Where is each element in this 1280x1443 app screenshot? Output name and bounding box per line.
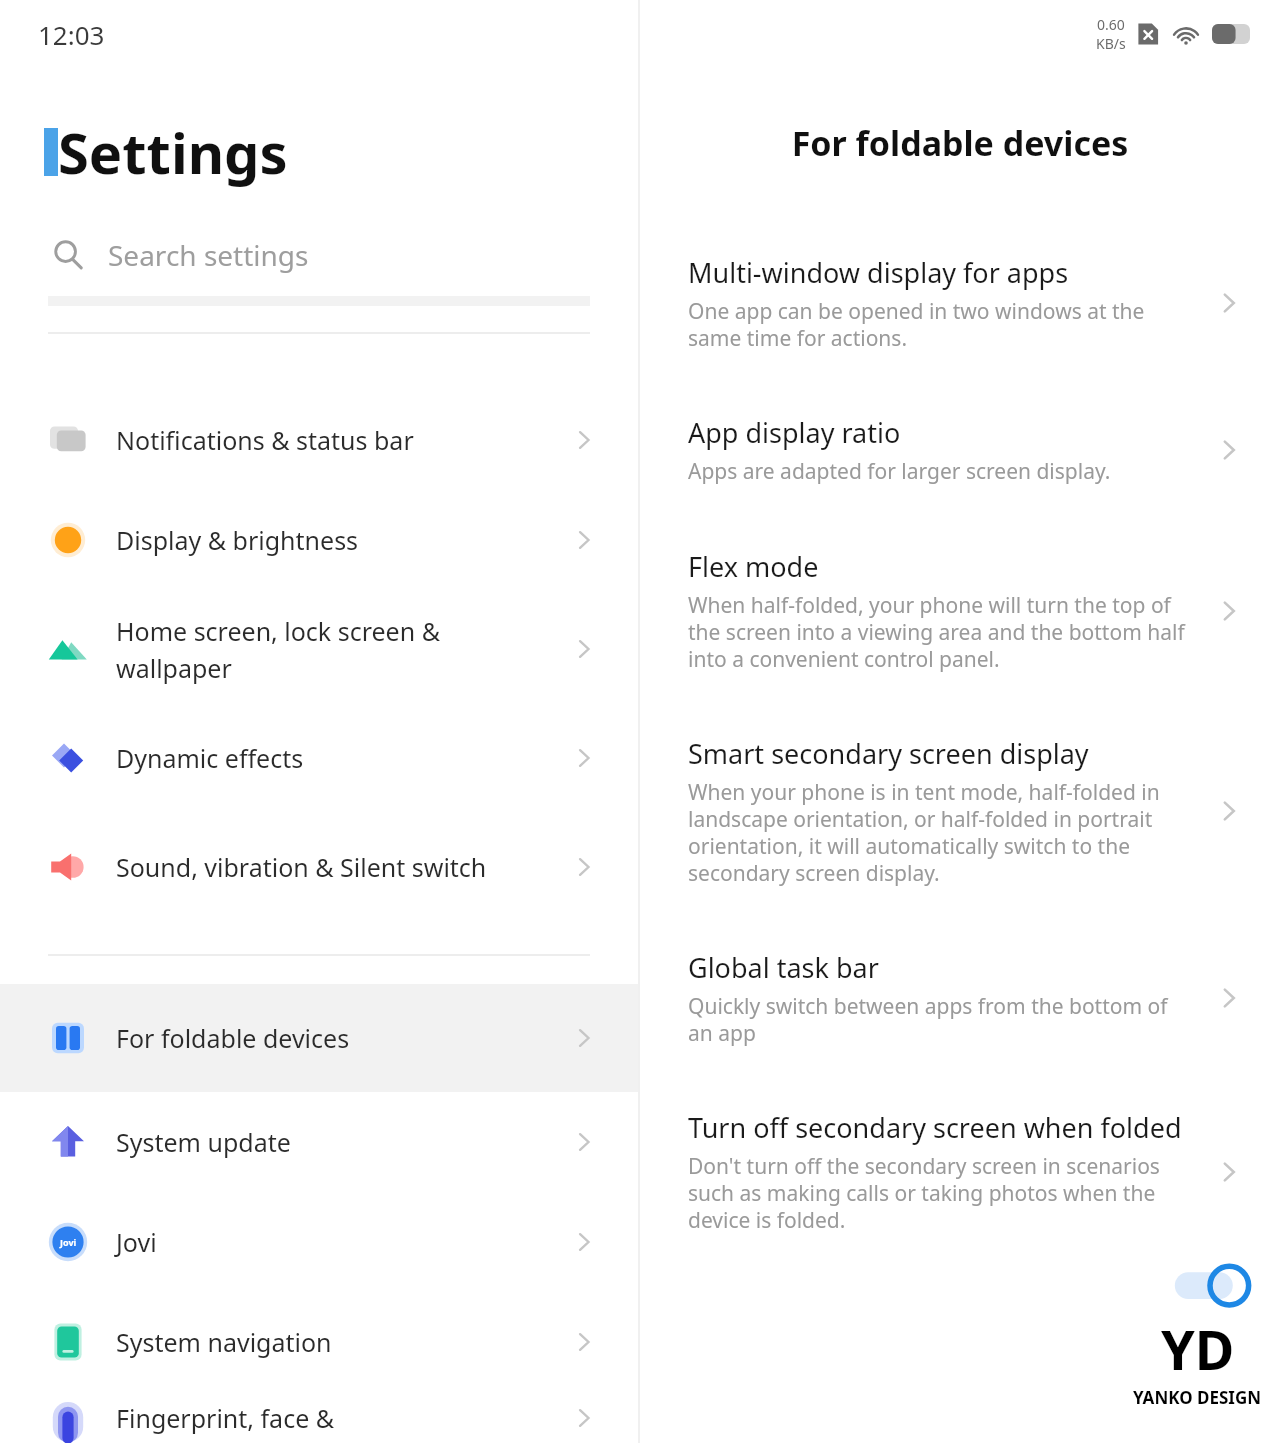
button[interactable]: Fingerprint, face &: [0, 1392, 638, 1443]
button[interactable]: System navigation: [0, 1292, 638, 1392]
staticText: YD: [1161, 1312, 1235, 1386]
staticText: System navigation: [116, 1325, 558, 1359]
staticText: Dynamic effects: [116, 741, 558, 775]
staticText: App display ratio: [688, 414, 901, 451]
button[interactable]: Smart secondary screen display: [640, 721, 1280, 901]
button[interactable]: Flex mode: [640, 534, 1280, 687]
staticText: Fingerprint, face &: [116, 1401, 558, 1435]
button[interactable]: Dynamic effects: [0, 708, 638, 808]
staticText: Global task bar: [688, 949, 879, 986]
staticText: Apps are adapted for larger screen displ…: [688, 457, 1111, 486]
staticText: One app can be opened in two windows at …: [688, 297, 1196, 352]
staticText: System update: [116, 1125, 558, 1159]
button[interactable]: System update: [0, 1092, 638, 1192]
button[interactable]: Display & brightness: [0, 490, 638, 590]
button[interactable]: Multi-window display for apps: [640, 240, 1280, 366]
button[interactable]: Turn off secondary screen when folded: [640, 1095, 1280, 1248]
staticText: Sound, vibration & Silent switch: [116, 850, 558, 884]
staticText: Settings: [58, 114, 288, 190]
staticText: Don't turn off the secondary screen in s…: [688, 1152, 1196, 1234]
staticText: Home screen, lock screen & wallpaper: [116, 614, 558, 685]
staticText: Jovi: [60, 1236, 77, 1248]
staticText: For foldable devices: [640, 120, 1280, 166]
staticText: Multi-window display for apps: [688, 254, 1069, 291]
staticText: Notifications & status bar: [116, 423, 558, 457]
staticText: Quickly switch between apps from the bot…: [688, 992, 1196, 1047]
staticText: Turn off secondary screen when folded: [688, 1109, 1182, 1146]
staticText: KB/s: [1096, 34, 1126, 53]
button[interactable]: Search: [0, 236, 638, 274]
staticText: Jovi: [116, 1225, 558, 1259]
staticText: 0.60: [1097, 15, 1125, 34]
staticText: Search settings: [108, 236, 309, 274]
button[interactable]: Notifications & status bar: [0, 390, 638, 490]
button[interactable]: App display ratio: [640, 400, 1280, 500]
other: Search: [52, 238, 86, 272]
staticText: Flex mode: [688, 548, 819, 585]
button[interactable]: Sound, vibration & Silent switch: [0, 808, 638, 926]
staticText: Display & brightness: [116, 523, 558, 557]
staticText: When your phone is in tent mode, half-fo…: [688, 778, 1196, 887]
button[interactable]: Global task bar: [640, 935, 1280, 1061]
button[interactable]: For foldable devices: [0, 984, 638, 1092]
button[interactable]: Jovi: [0, 1192, 638, 1292]
staticText: For foldable devices: [116, 1021, 558, 1055]
button[interactable]: Home screen, lock screen & wallpaper: [0, 590, 638, 708]
staticText: YANKO DESIGN: [1133, 1386, 1262, 1409]
staticText: 12:03: [38, 17, 105, 52]
staticText: When half-folded, your phone will turn t…: [688, 591, 1196, 673]
staticText: Smart secondary screen display: [688, 735, 1089, 772]
